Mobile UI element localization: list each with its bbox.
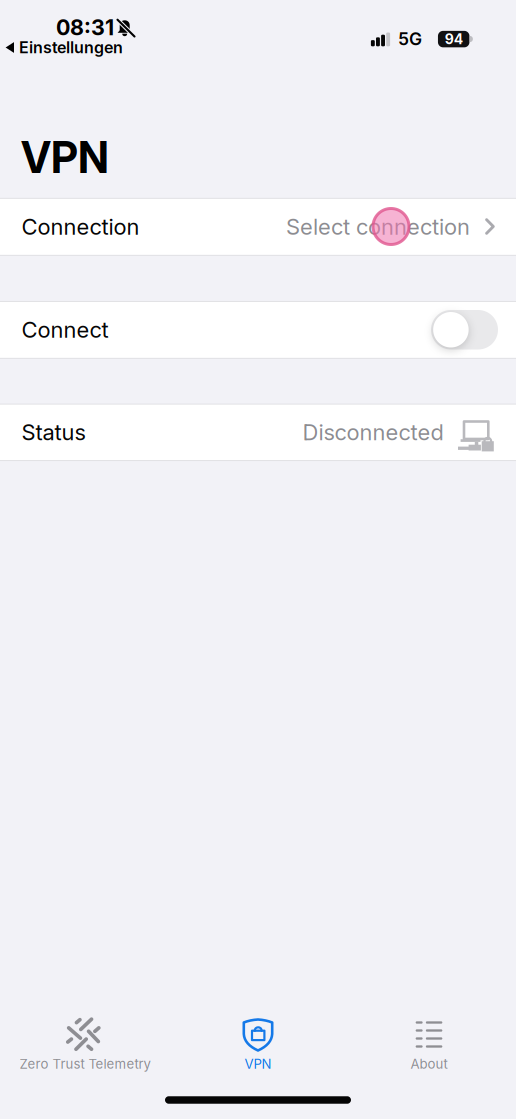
staticText: VPN xyxy=(21,133,109,182)
staticText: Connection xyxy=(21,214,139,240)
button[interactable]: VPN xyxy=(173,1011,343,1077)
staticText: 5G xyxy=(398,29,422,49)
button[interactable]: About xyxy=(344,1011,514,1077)
staticText: Disconnected xyxy=(302,419,443,445)
staticText: VPN xyxy=(244,1056,271,1072)
button[interactable]: Einstellungen xyxy=(5,37,137,57)
button[interactable]: Connection xyxy=(0,198,516,255)
button[interactable] xyxy=(431,310,498,349)
staticText: Einstellungen xyxy=(19,38,123,57)
staticText: About xyxy=(410,1056,447,1072)
staticText: 08:31 xyxy=(56,15,114,40)
button[interactable]: Zero Trust Telemetry xyxy=(0,1011,170,1077)
staticText: Select connection xyxy=(286,214,470,240)
staticText: 94 xyxy=(445,31,463,47)
staticText: Connect xyxy=(21,317,108,343)
staticText: Zero Trust Telemetry xyxy=(19,1056,150,1072)
staticText: Status xyxy=(21,419,85,445)
